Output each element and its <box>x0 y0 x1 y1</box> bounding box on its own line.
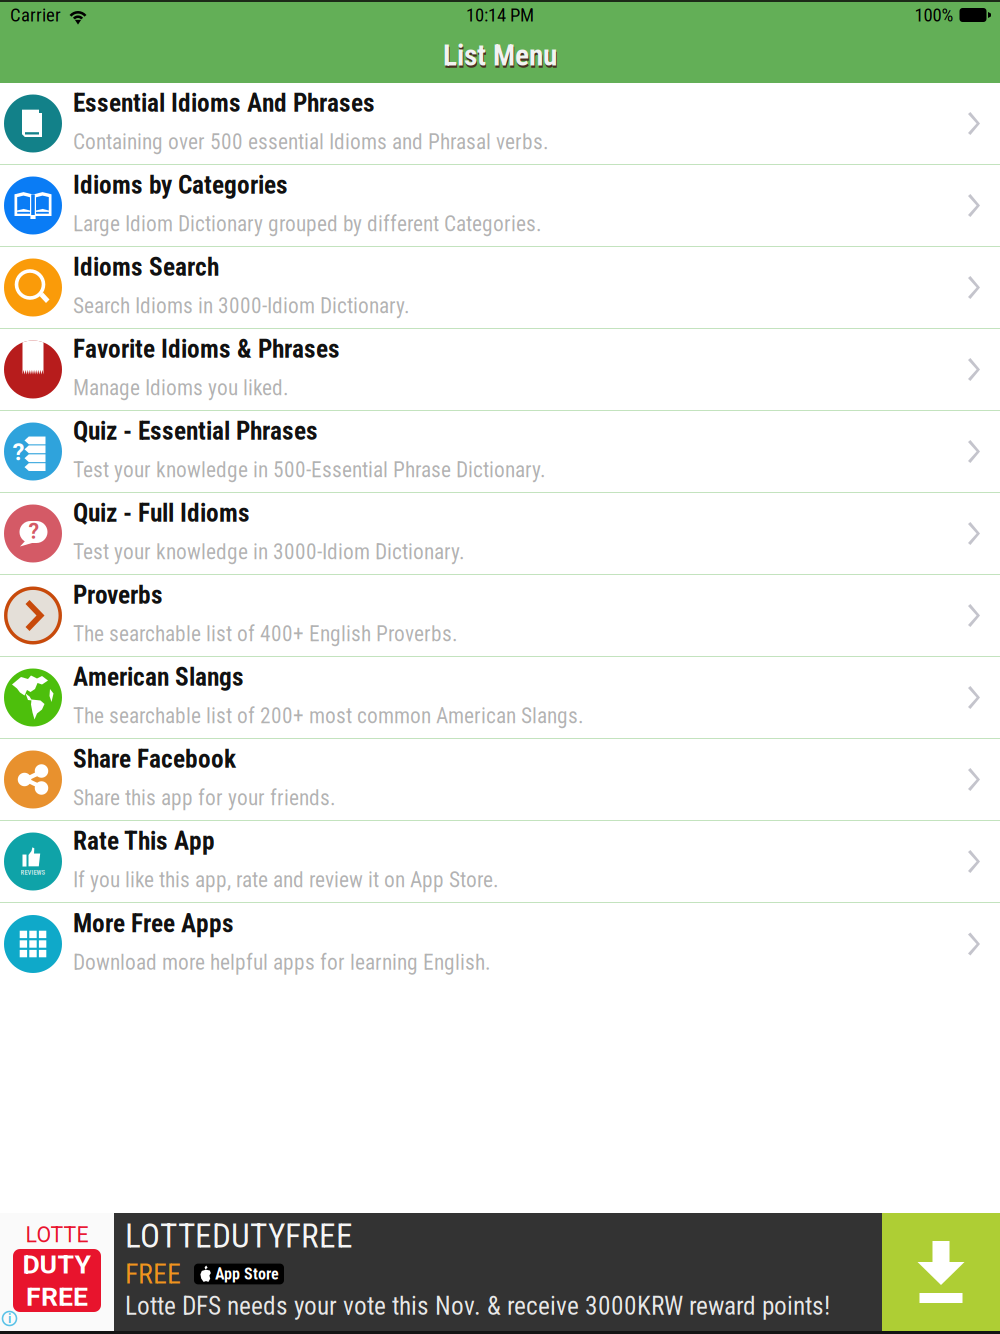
staticText: List Menu <box>444 40 558 75</box>
staticText: i <box>8 1311 11 1326</box>
staticText: Quiz - Full Idioms <box>73 498 250 528</box>
staticText: Download more helpful apps for learning … <box>73 950 491 975</box>
staticText: Test your knowledge in 3000-Idiom Dictio… <box>73 539 465 564</box>
staticText: LOTTEDUTYFREE <box>125 1216 353 1256</box>
staticText: Proverbs <box>73 580 163 610</box>
button[interactable]: Essential Idioms And Phrases <box>0 83 1000 165</box>
button[interactable]: Share Facebook <box>0 739 1000 821</box>
staticText: Lotte DFS needs your vote this Nov. & re… <box>125 1291 830 1321</box>
staticText: Manage Idioms you liked. <box>73 375 289 400</box>
staticText: If you like this app, rate and review it… <box>73 867 499 892</box>
button[interactable]: More Free Apps <box>0 903 1000 985</box>
button[interactable]: Proverbs <box>0 575 1000 657</box>
button[interactable] <box>0 1213 1000 1331</box>
staticText: FREE <box>26 1281 88 1312</box>
staticText: Essential Idioms And Phrases <box>73 88 375 118</box>
staticText: List Menu <box>443 38 557 73</box>
staticText: ? <box>12 438 24 466</box>
button[interactable]: American Slangs <box>0 657 1000 739</box>
button[interactable]: Idioms Search <box>0 247 1000 329</box>
staticText: Containing over 500 essential Idioms and… <box>73 129 549 154</box>
staticText: App Store <box>215 1265 279 1283</box>
button[interactable]: REVIEWS <box>0 821 1000 903</box>
staticText: Idioms Search <box>73 252 219 282</box>
staticText: Rate This App <box>73 826 215 856</box>
staticText: Test your knowledge in 500-Essential Phr… <box>73 457 546 482</box>
button[interactable]: Favorite Idioms & Phrases <box>0 329 1000 411</box>
button[interactable]: LOTTEDUTYFREE <box>0 1213 1000 1331</box>
staticText: The searchable list of 400+ English Prov… <box>73 621 458 646</box>
button[interactable]: ? <box>0 411 1000 493</box>
staticText: Large Idiom Dictionary grouped by differ… <box>73 211 542 236</box>
staticText: Share Facebook <box>73 744 236 774</box>
staticText: LOTTE <box>25 1222 88 1247</box>
staticText: Quiz - Essential Phrases <box>73 416 318 446</box>
button[interactable]: Idioms by Categories <box>0 165 1000 247</box>
button[interactable]: ? <box>0 493 1000 575</box>
staticText: Share this app for your friends. <box>73 785 336 810</box>
staticText: The searchable list of 200+ most common … <box>73 703 584 728</box>
staticText: REVIEWS <box>20 869 45 876</box>
staticText: ? <box>28 519 39 544</box>
staticText: Favorite Idioms & Phrases <box>73 334 340 364</box>
staticText: 100% <box>914 4 953 26</box>
staticText: More Free Apps <box>73 909 234 938</box>
button[interactable]: Download <box>882 1213 1000 1331</box>
staticText: DUTY <box>22 1249 91 1280</box>
staticText: FREE <box>125 1258 181 1290</box>
staticText: American Slangs <box>73 662 244 692</box>
staticText: Carrier <box>10 4 61 26</box>
staticText: 10:14 PM <box>466 4 534 26</box>
staticText: Search Idioms in 3000-Idiom Dictionary. <box>73 293 410 318</box>
staticText: Idioms by Categories <box>73 170 288 200</box>
